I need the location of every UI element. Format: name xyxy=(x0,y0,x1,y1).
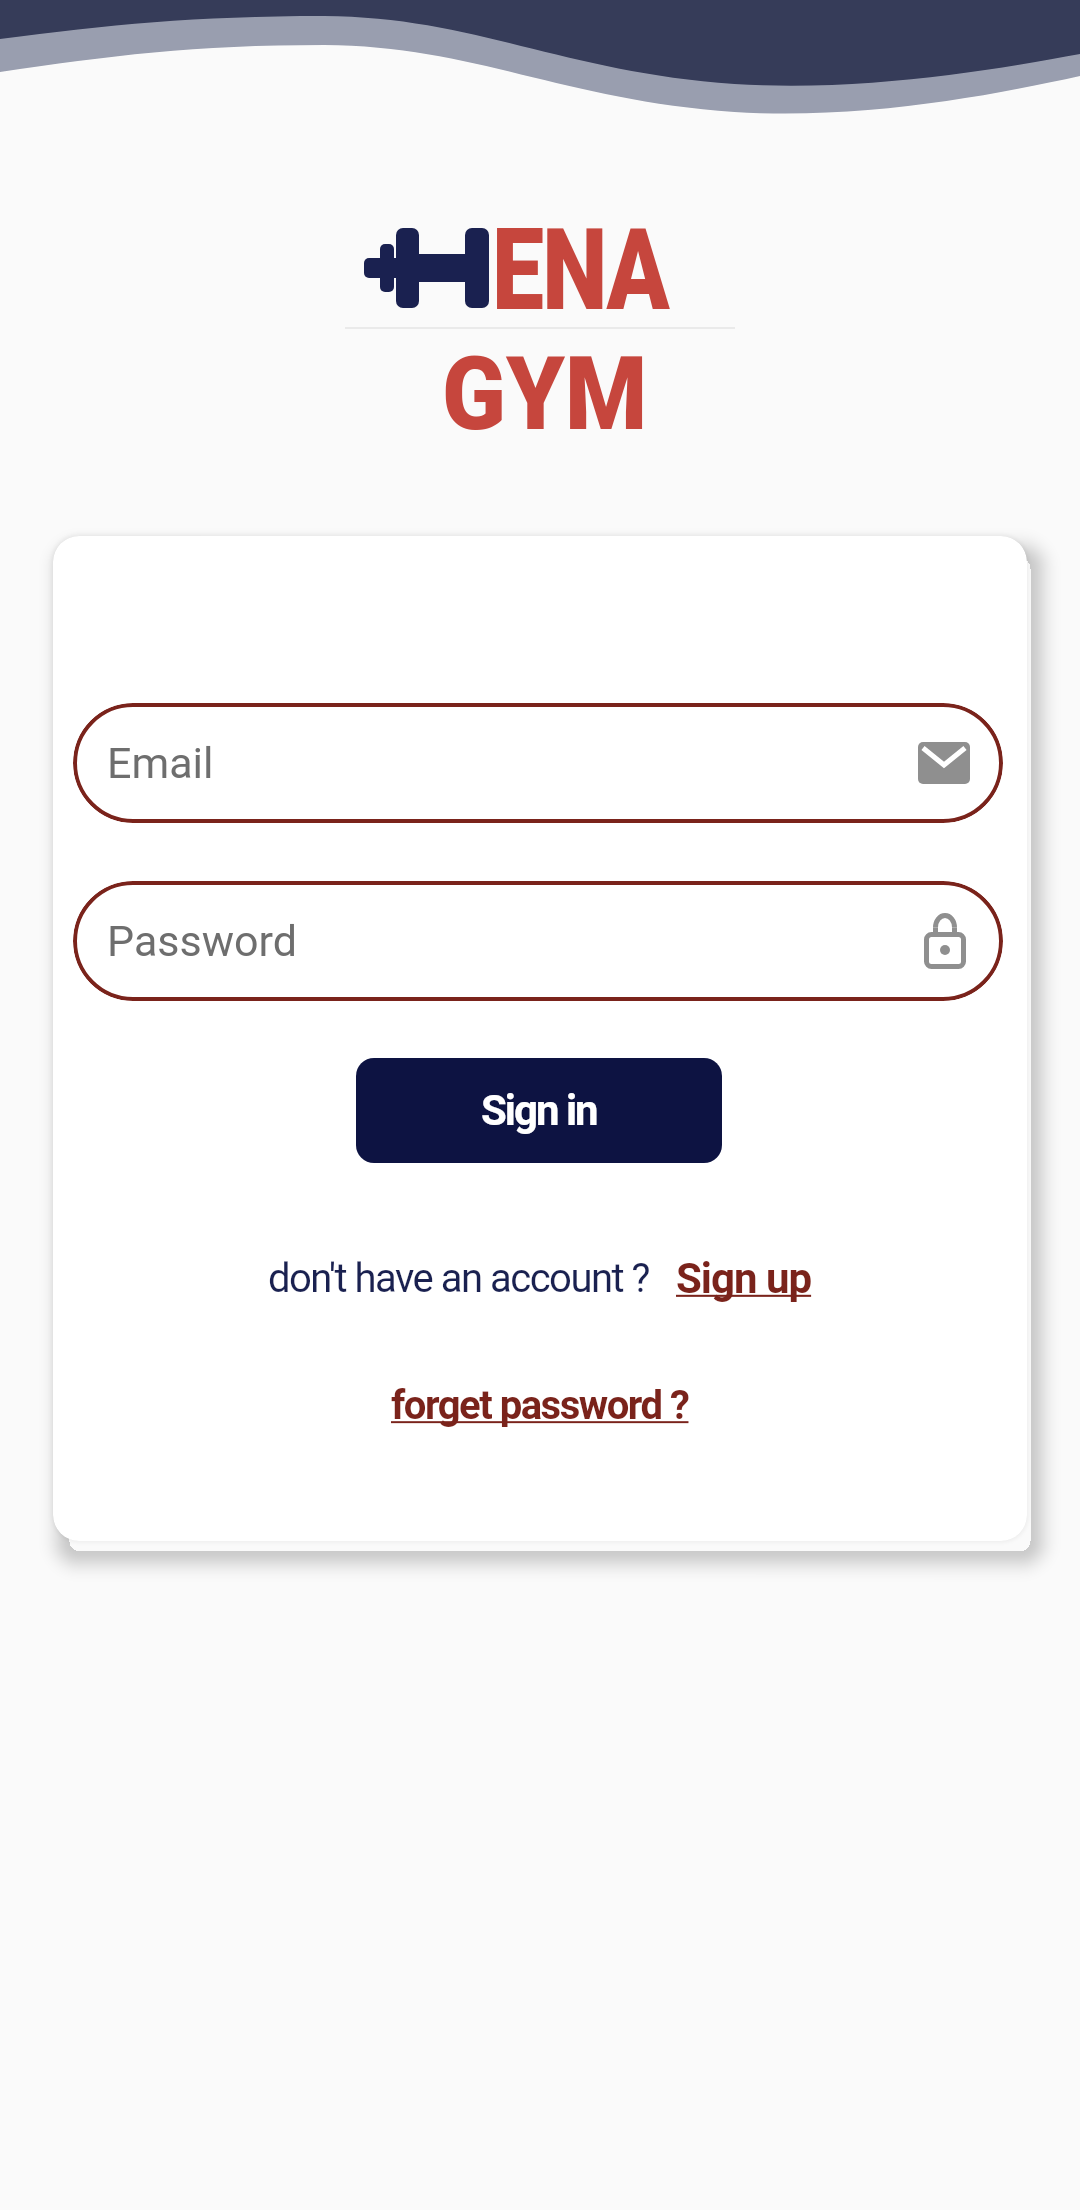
staticText: don't have an account ? xyxy=(268,1255,649,1302)
staticText: Password xyxy=(107,916,297,966)
staticText: GYM xyxy=(442,334,647,454)
button[interactable]: forget password ? xyxy=(391,1382,689,1429)
staticText: ENA xyxy=(492,204,668,336)
button[interactable]: Password xyxy=(73,881,1003,1001)
button[interactable]: Sign up xyxy=(676,1254,812,1303)
staticText: Email xyxy=(107,738,214,788)
button[interactable]: Email xyxy=(73,703,1003,823)
button[interactable]: Sign in xyxy=(356,1058,722,1163)
staticText: Sign in xyxy=(481,1086,597,1135)
